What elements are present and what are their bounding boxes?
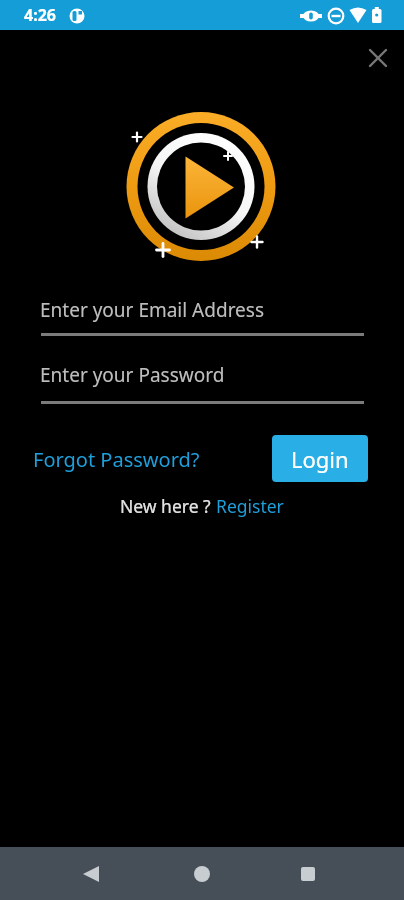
staticText: Enter your Email Address xyxy=(40,297,265,323)
staticText: Login xyxy=(291,444,349,474)
staticText: New here ? xyxy=(120,494,216,518)
button[interactable]: Register xyxy=(216,494,284,518)
staticText: 4:26 xyxy=(24,4,56,26)
button[interactable]: Login xyxy=(272,435,368,482)
staticText: Forgot Password? xyxy=(33,446,200,473)
button[interactable]: Forgot Password? xyxy=(33,446,200,473)
staticText: Register xyxy=(216,494,284,518)
staticText: Enter your Password xyxy=(40,362,225,388)
button[interactable] xyxy=(360,40,395,75)
button[interactable] xyxy=(74,857,108,891)
button[interactable] xyxy=(185,857,219,891)
button[interactable] xyxy=(291,857,325,891)
